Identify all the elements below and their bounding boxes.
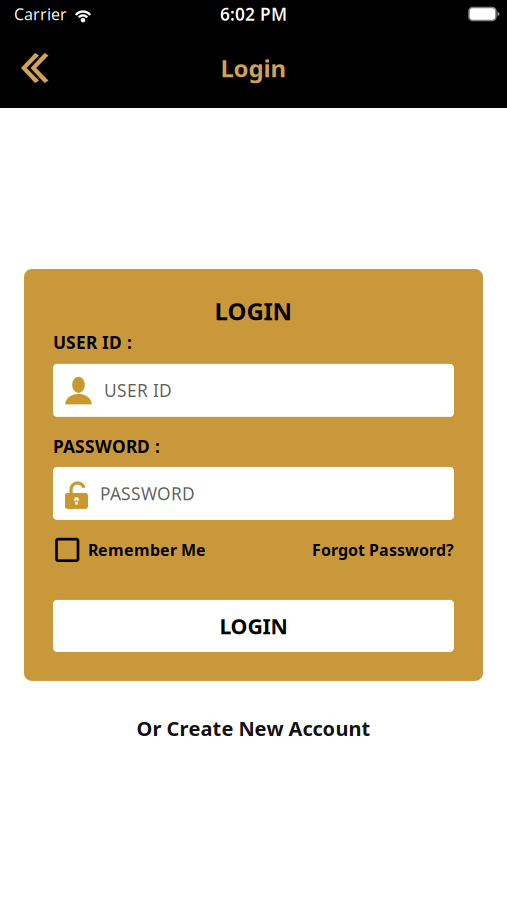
button[interactable]: LOGIN <box>53 600 454 652</box>
staticText: PASSWORD <box>100 482 195 505</box>
staticText: 6:02 PM <box>220 2 287 25</box>
staticText: Forgot Password? <box>312 539 454 560</box>
button[interactable]: Or Create New Account <box>136 715 370 741</box>
staticText: Login <box>220 52 286 84</box>
staticText: USER ID <box>104 379 172 402</box>
staticText: LOGIN <box>214 295 292 327</box>
staticText: Or Create New Account <box>136 715 370 741</box>
staticText: USER ID : <box>53 331 132 354</box>
button[interactable]: Forgot Password? <box>312 539 454 560</box>
staticText: PASSWORD : <box>53 435 160 458</box>
staticText: Carrier <box>14 3 67 25</box>
button[interactable]: Remember Me <box>53 539 206 561</box>
button[interactable]: Back <box>0 40 66 96</box>
staticText: LOGIN <box>219 612 287 640</box>
staticText: Remember Me <box>88 539 206 560</box>
